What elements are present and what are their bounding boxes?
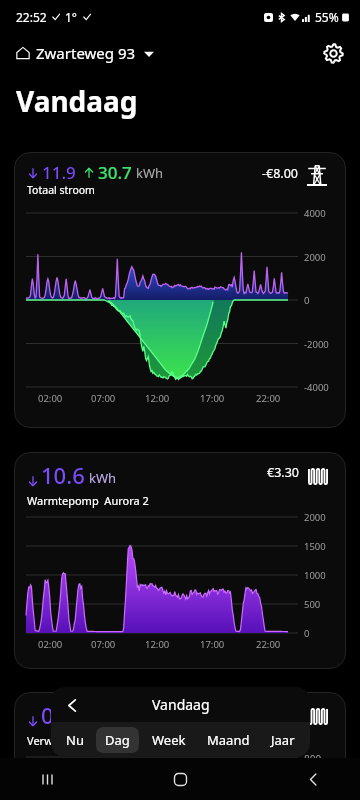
staticText: kWh [89,469,117,487]
staticText: 22:52 [16,9,47,25]
staticText: 02:00 [38,638,63,651]
staticText: Verwarming [27,733,91,748]
staticText: 07:00 [91,392,116,405]
staticText: 02:00 [38,392,63,405]
staticText: Vandaag [16,82,138,120]
staticText: Week [152,731,186,749]
staticText: 1500 [304,540,326,553]
button[interactable]: Home [159,758,201,800]
staticText: 22:00 [256,638,281,651]
staticText: 12:00 [145,638,170,651]
staticText: 10.6 [41,460,85,490]
staticText: -2000 [304,338,329,351]
staticText: 30.7 [98,161,132,184]
staticText: Jaar [271,731,295,749]
button[interactable]: Zwarteweg 93 [12,40,158,66]
button[interactable]: Jaar [262,727,304,753]
staticText: Totaal stroom [27,183,95,197]
staticText: 07:00 [91,638,116,651]
staticText: 2000 [304,251,326,264]
button[interactable]: Back [57,690,87,720]
button[interactable]: Week [143,727,195,753]
staticText: 0.0 [41,700,73,730]
button[interactable]: Maand [198,727,259,753]
staticText: 11.9 [42,161,76,184]
staticText: 0 [304,294,310,307]
staticText: -€8.00 [262,165,298,182]
staticText: kWh [136,164,164,182]
staticText: 800 [304,752,322,766]
staticText: 500 [304,598,321,611]
staticText: 1° [65,9,78,25]
staticText: 2000 [304,511,326,524]
button[interactable]: Back [292,758,334,800]
staticText: -4000 [304,381,329,394]
staticText: 55% [315,9,339,25]
button[interactable]: 11.9 [14,152,346,428]
staticText: 0 [304,627,310,640]
button[interactable]: 10.6 [14,452,346,669]
staticText: 22:00 [256,392,281,405]
staticText: 17:00 [200,638,225,651]
staticText: 1000 [304,569,326,582]
button[interactable]: Settings [318,38,348,68]
staticText: 4000 [304,207,326,220]
button[interactable]: Recents [26,758,68,800]
staticText: Warmtepomp Aurora 2 [27,493,149,508]
staticText: Vandaag [152,695,210,714]
button[interactable]: Dag [96,727,139,753]
staticText: €3.30 [267,464,299,481]
staticText: Maand [207,731,250,749]
button[interactable]: Nu [57,727,93,753]
staticText: kWh [77,709,105,727]
staticText: Dag [105,731,130,749]
staticText: Zwarteweg 93 [36,43,136,63]
staticText: 12:00 [145,392,170,405]
staticText: Nu [66,731,84,749]
staticText: 17:00 [200,392,225,405]
button[interactable]: 0.0 [14,692,346,800]
